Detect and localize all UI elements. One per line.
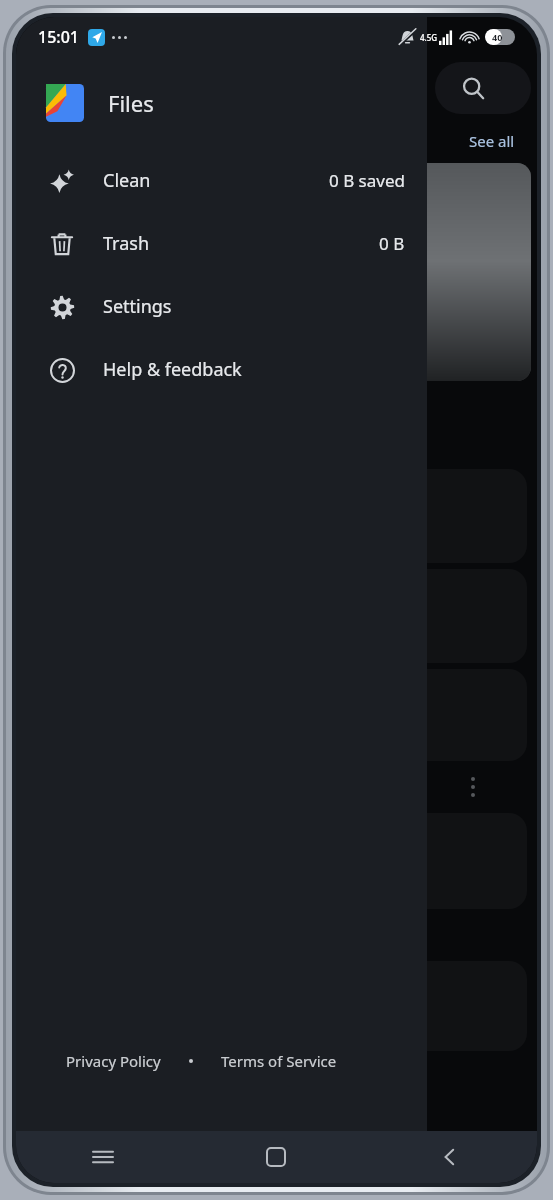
button[interactable]: es <box>166 469 527 563</box>
button[interactable]: Home <box>189 1131 363 1183</box>
staticText: Help & feedback <box>103 357 242 382</box>
staticText: 40 <box>492 31 503 43</box>
button[interactable]: o calculate <box>166 669 527 761</box>
button[interactable]: Help & feedback <box>16 338 427 401</box>
staticText: Settings <box>103 294 172 319</box>
staticText: 0 B saved <box>329 169 405 192</box>
staticText: Trash <box>103 231 150 256</box>
button[interactable]: Search <box>435 62 531 114</box>
staticText: WhatsApp I… <box>158 351 233 367</box>
button[interactable]: See all <box>469 131 515 151</box>
button[interactable]: Back <box>363 1131 537 1183</box>
button[interactable]: folder <box>166 813 527 909</box>
button[interactable]: Recent apps <box>16 1131 189 1183</box>
button[interactable]: D <box>166 569 527 663</box>
button[interactable]: Privacy Policy <box>66 1051 161 1071</box>
button[interactable]: Settings <box>16 275 427 338</box>
staticText: Clean <box>103 168 151 193</box>
staticText: 0 B <box>379 232 405 255</box>
button[interactable]: Clean <box>16 149 427 212</box>
button[interactable]: Trash <box>16 212 427 275</box>
staticText: Files <box>108 88 154 118</box>
button[interactable]: Terms of Service <box>221 1051 337 1071</box>
staticText: 15:01 <box>38 26 79 48</box>
staticText: 4.5G <box>420 32 438 43</box>
button[interactable]: r storage <box>166 961 527 1051</box>
